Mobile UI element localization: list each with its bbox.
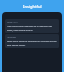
- staticText: Yesterday: [7, 36, 17, 39]
- staticText: Insightful: [23, 4, 42, 9]
- button[interactable]: Yesterday: [5, 34, 59, 48]
- button[interactable]: Today 9:41: [5, 19, 59, 33]
- staticText: Today 9:41: [7, 21, 18, 24]
- staticText: Deep work sessions averaged 52 minutes a…: [7, 40, 57, 46]
- staticText: Your focus time improved by 24 percent t…: [7, 25, 57, 31]
